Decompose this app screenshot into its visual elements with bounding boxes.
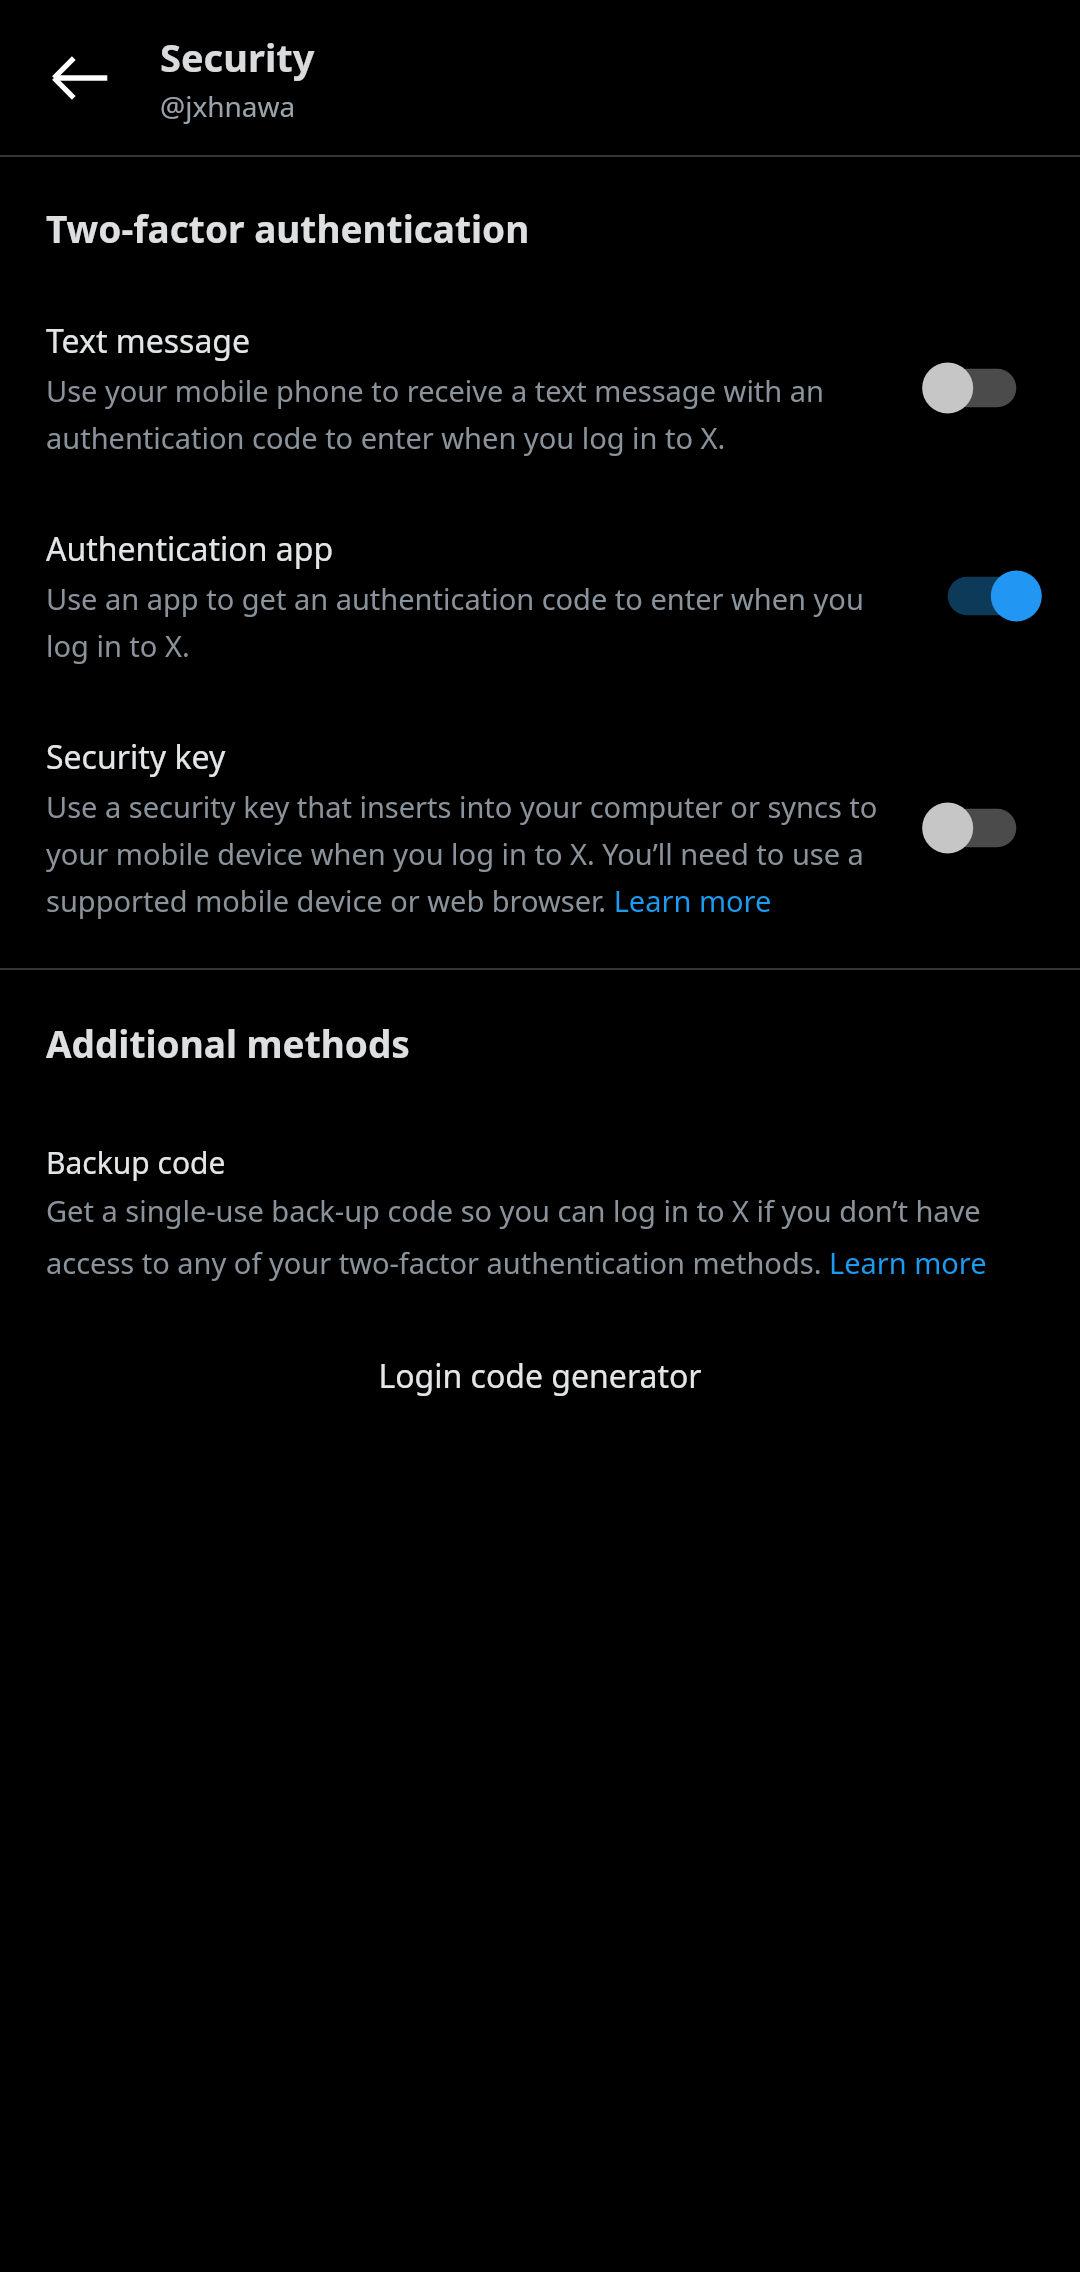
button[interactable]: Security key: [0, 735, 1080, 920]
button[interactable]: Disabled: [930, 351, 1034, 425]
staticText: Use a security key that inserts into you…: [46, 787, 904, 920]
staticText: Authentication app: [46, 527, 334, 571]
staticText: Use an app to get an authentication code…: [46, 579, 904, 665]
staticText: Login code generator: [378, 1354, 702, 1398]
staticText: Use your mobile phone to receive a text …: [46, 371, 904, 457]
staticText: Get a single-use back-up code so you can…: [46, 1191, 1034, 1282]
button[interactable]: Login code generator: [0, 1354, 1080, 1398]
button[interactable]: Authentication app: [0, 527, 1080, 665]
button[interactable]: Backup code: [0, 1142, 1080, 1282]
button[interactable]: Text message: [0, 319, 1080, 457]
staticText: Backup code: [46, 1142, 226, 1183]
staticText: Text message: [46, 319, 251, 363]
staticText: Security key: [46, 735, 226, 779]
staticText: Additional methods: [46, 1018, 410, 1068]
staticText: Two-factor authentication: [46, 203, 530, 253]
button[interactable]: Back: [0, 0, 160, 155]
button[interactable]: Enabled: [930, 559, 1034, 633]
button[interactable]: Disabled: [930, 791, 1034, 865]
staticText: Security: [160, 31, 315, 83]
staticText: @jxhnawa: [160, 87, 296, 125]
